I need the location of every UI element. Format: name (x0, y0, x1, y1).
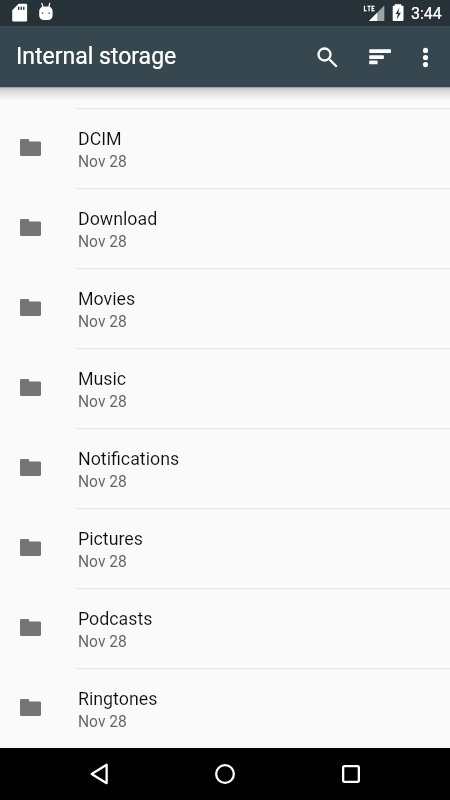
button[interactable]: Movies (0, 268, 450, 348)
button[interactable]: Search (298, 28, 351, 81)
staticText: Nov 28 (78, 633, 127, 651)
button[interactable]: Podcasts (0, 588, 450, 668)
staticText: 3:44 (411, 4, 442, 23)
staticText: Nov 28 (78, 713, 127, 731)
staticText: Notifications (78, 448, 180, 469)
staticText: Movies (78, 288, 136, 309)
staticText: Download (78, 208, 158, 229)
staticText: DCIM (78, 128, 122, 149)
staticText: Nov 28 (78, 313, 127, 331)
staticText: Nov 28 (78, 473, 127, 491)
staticText: Nov 28 (78, 233, 127, 251)
button[interactable]: Home (199, 748, 251, 800)
staticText: Nov 28 (78, 153, 127, 171)
staticText: Nov 28 (78, 393, 127, 411)
button[interactable]: DCIM (0, 108, 450, 188)
staticText: Ringtones (78, 688, 158, 709)
button[interactable]: Ringtones (0, 668, 450, 748)
button[interactable]: Back (73, 748, 125, 800)
staticText: Pictures (78, 528, 143, 549)
staticText: Podcasts (78, 608, 153, 629)
button[interactable]: Music (0, 348, 450, 428)
button[interactable]: Sort (353, 30, 406, 83)
staticText: Internal storage (16, 43, 177, 70)
button[interactable]: Recents (325, 748, 377, 800)
button[interactable]: More options (399, 31, 450, 84)
button[interactable]: Download (0, 188, 450, 268)
button[interactable]: Notifications (0, 428, 450, 508)
button[interactable]: Pictures (0, 508, 450, 588)
staticText: Music (78, 368, 127, 389)
staticText: Nov 28 (78, 553, 127, 571)
